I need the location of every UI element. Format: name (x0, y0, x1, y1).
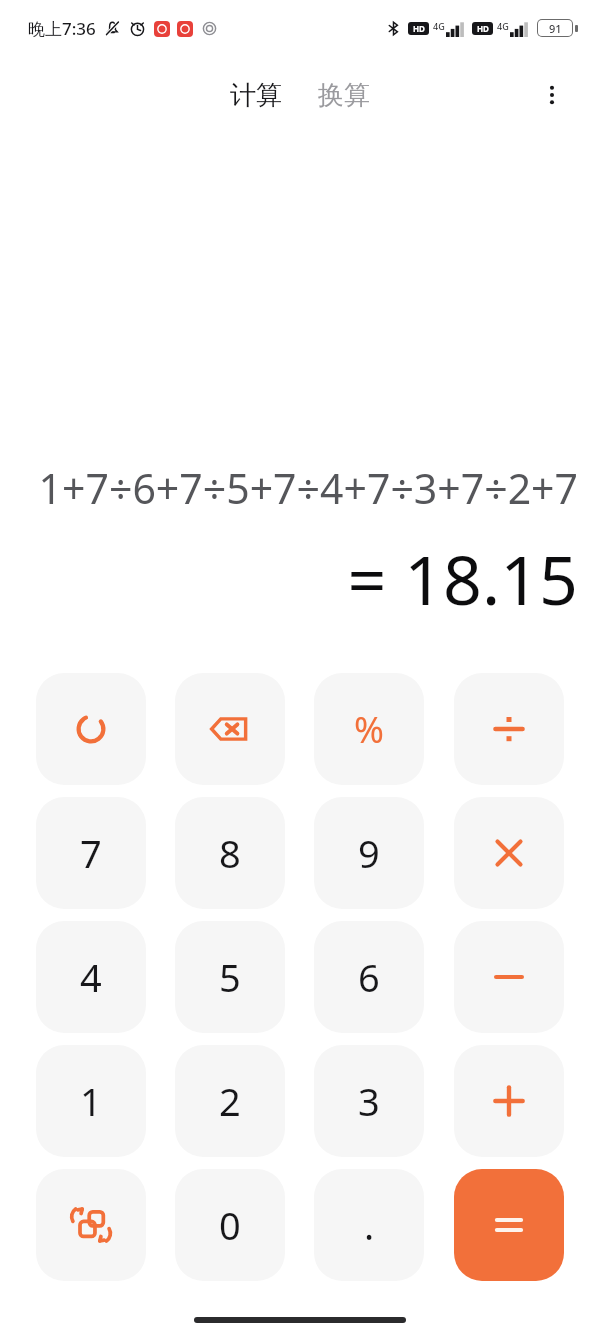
staticText: 4 (80, 951, 102, 1003)
staticText: 1+7÷6+7÷5+7÷4+7÷3+7÷2+7 (22, 460, 578, 516)
staticText: 4G (433, 20, 445, 32)
staticText: 4G (497, 20, 509, 32)
button[interactable]: . (314, 1169, 424, 1281)
button[interactable]: 3 (314, 1045, 424, 1157)
staticText: 1 (80, 1075, 102, 1127)
staticText: 9 (358, 827, 380, 879)
staticText: 晚上7:36 (28, 17, 96, 40)
button[interactable]: 1 (36, 1045, 146, 1157)
staticText: 8 (219, 827, 241, 879)
button[interactable]: 0 (175, 1169, 285, 1281)
button[interactable]: 4 (36, 921, 146, 1033)
staticText: . (364, 1199, 375, 1251)
button[interactable]: Minus (454, 921, 564, 1033)
staticText: = 18.15 (22, 532, 578, 625)
button[interactable]: Backspace (175, 673, 285, 785)
staticText: 5 (219, 951, 241, 1003)
button[interactable]: 5 (175, 921, 285, 1033)
button[interactable]: Plus (454, 1045, 564, 1157)
staticText: 91 (549, 21, 562, 36)
button[interactable]: Unit conversion (36, 1169, 146, 1281)
staticText: 7 (80, 827, 102, 879)
button[interactable]: 2 (175, 1045, 285, 1157)
button[interactable]: 8 (175, 797, 285, 909)
button[interactable]: Divide (454, 673, 564, 785)
button[interactable]: 9 (314, 797, 424, 909)
button[interactable]: 换算 (310, 73, 378, 118)
staticText: HD (477, 23, 489, 34)
staticText: 3 (358, 1075, 380, 1127)
button[interactable]: % (314, 673, 424, 785)
staticText: 6 (358, 951, 380, 1003)
button[interactable]: 7 (36, 797, 146, 909)
button[interactable]: Equals (454, 1169, 564, 1281)
staticText: % (354, 705, 384, 754)
button[interactable]: Multiply (454, 797, 564, 909)
staticText: 计算 (230, 79, 282, 112)
staticText: HD (413, 23, 425, 34)
button[interactable]: Clear (36, 673, 146, 785)
button[interactable]: 6 (314, 921, 424, 1033)
staticText: 2 (219, 1075, 241, 1127)
staticText: 换算 (318, 79, 370, 112)
button[interactable]: More options (528, 71, 576, 119)
staticText: 0 (219, 1199, 241, 1251)
button[interactable]: 计算 (222, 73, 290, 118)
